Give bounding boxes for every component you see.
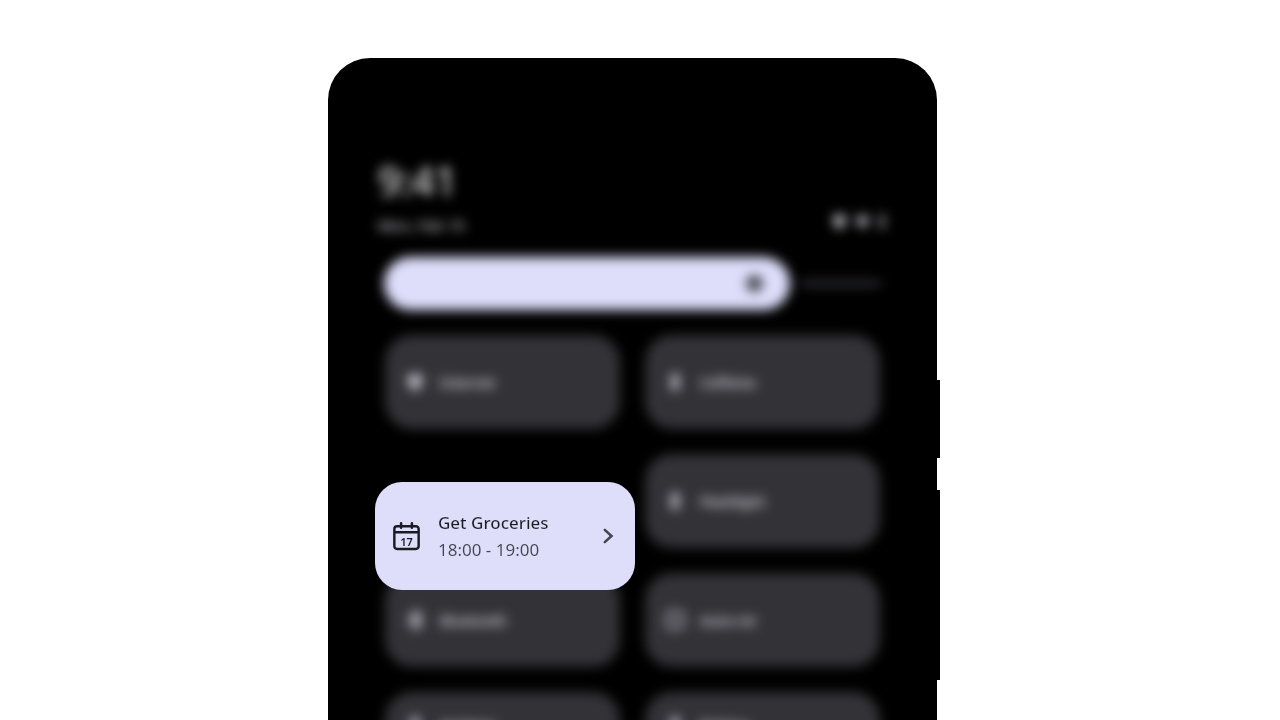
button[interactable]: Flashlight bbox=[645, 454, 880, 548]
staticText: 9:41 bbox=[378, 153, 458, 207]
button[interactable]: Airplane bbox=[385, 692, 620, 720]
staticText: 17 bbox=[400, 534, 413, 549]
staticText: 18:00 - 19:00 bbox=[438, 538, 540, 561]
button[interactable]: Battery bbox=[645, 692, 880, 720]
button[interactable]: Internet bbox=[385, 335, 620, 429]
staticText: Bluetooth bbox=[440, 611, 507, 630]
button[interactable]: Bluetooth bbox=[385, 573, 620, 667]
staticText: Flashlight bbox=[700, 492, 766, 511]
button[interactable]: Auto-rot bbox=[645, 573, 880, 667]
button[interactable]: 17 bbox=[375, 482, 635, 590]
button[interactable]: Caffeine bbox=[645, 335, 880, 429]
staticText: Auto-rot bbox=[700, 611, 756, 630]
staticText: Battery bbox=[700, 716, 750, 720]
staticText: Airplane bbox=[440, 716, 497, 720]
other: Open event bbox=[597, 525, 619, 547]
staticText: Mon, Feb 19 bbox=[378, 215, 465, 235]
staticText: Caffeine bbox=[700, 373, 756, 392]
staticText: Get Groceries bbox=[438, 511, 549, 534]
staticText: Internet bbox=[440, 373, 496, 392]
